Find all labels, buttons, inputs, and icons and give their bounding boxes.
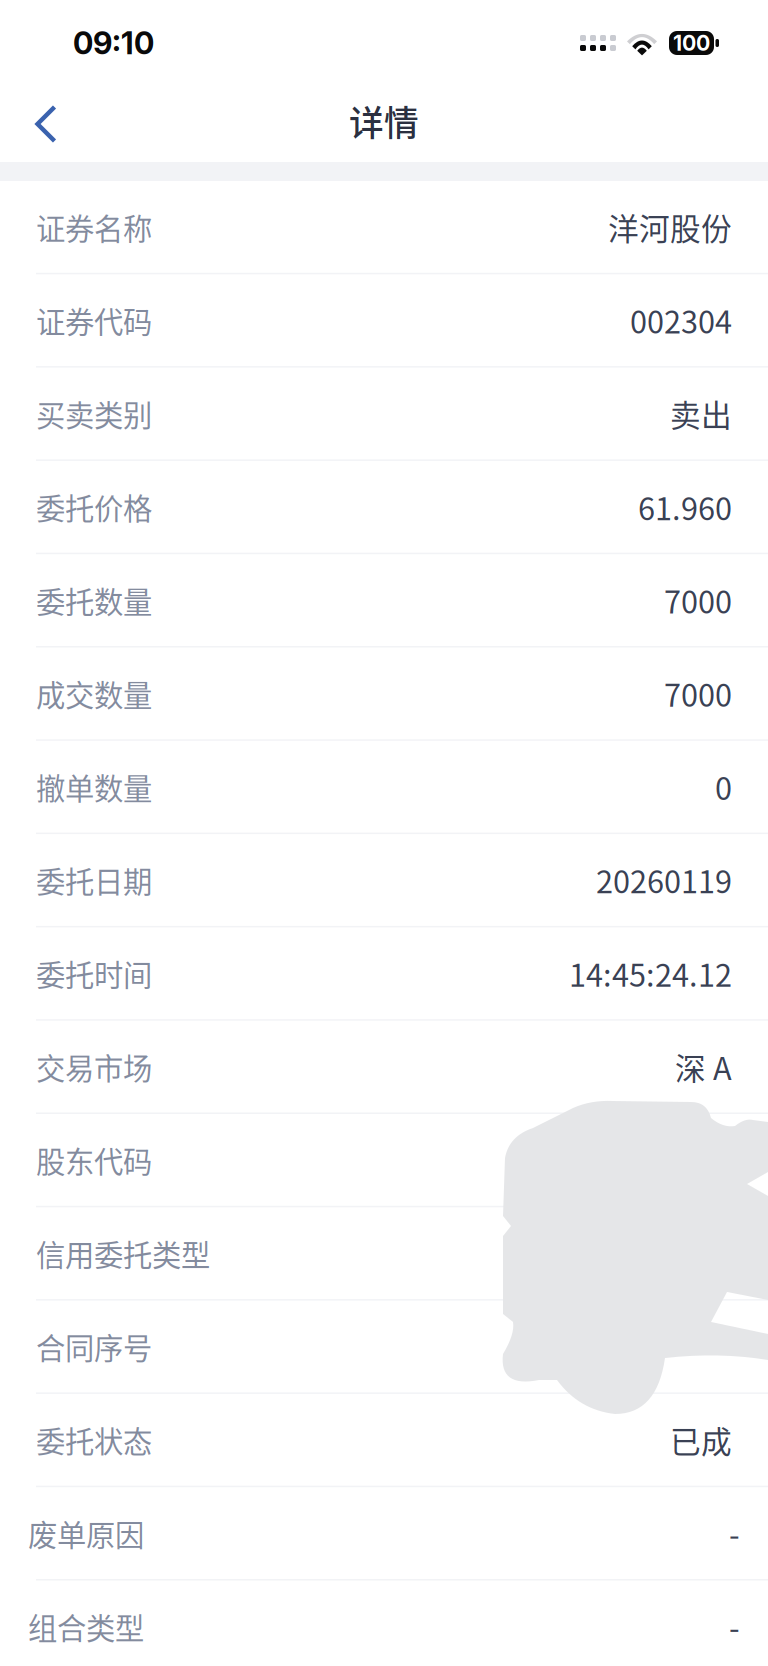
button[interactable]: 组合类型 bbox=[0, 1580, 768, 1666]
staticText: 深 A bbox=[675, 1044, 732, 1089]
staticText: 委托状态 bbox=[36, 1419, 152, 1461]
staticText: 合同序号 bbox=[36, 1325, 152, 1368]
button[interactable]: Back bbox=[0, 86, 92, 162]
button[interactable]: 委托日期 bbox=[0, 834, 768, 927]
button[interactable]: 废单原因 bbox=[0, 1487, 768, 1580]
button[interactable]: 委托价格 bbox=[0, 461, 768, 554]
button[interactable]: 买卖类别 bbox=[0, 368, 768, 461]
staticText: - bbox=[729, 1511, 740, 1555]
button[interactable]: 交易市场 bbox=[0, 1021, 768, 1114]
staticText: 洋河股份 bbox=[608, 205, 732, 249]
button[interactable]: 合同序号 bbox=[0, 1301, 768, 1394]
staticText: 委托日期 bbox=[36, 859, 152, 901]
staticText: 组合类型 bbox=[28, 1605, 144, 1648]
staticText: 已成 bbox=[670, 1418, 732, 1462]
button[interactable]: 成交数量 bbox=[0, 647, 768, 741]
button[interactable]: 委托状态 bbox=[0, 1394, 768, 1487]
staticText: 委托时间 bbox=[36, 952, 152, 995]
staticText: 7000 bbox=[664, 578, 732, 622]
button[interactable]: 股东代码 bbox=[0, 1114, 768, 1207]
staticText: 卖出 bbox=[670, 391, 732, 436]
button[interactable]: 委托时间 bbox=[0, 927, 768, 1021]
staticText: 撤单数量 bbox=[36, 765, 152, 808]
staticText: 002304 bbox=[630, 298, 732, 342]
staticText: 委托数量 bbox=[36, 579, 152, 621]
staticText: 100 bbox=[673, 30, 710, 56]
staticText: 61.960 bbox=[638, 485, 732, 529]
button[interactable]: 证券名称 bbox=[0, 181, 768, 274]
staticText: 信用委托类型 bbox=[36, 1232, 210, 1274]
staticText: 交易市场 bbox=[36, 1045, 152, 1088]
staticText: 成交数量 bbox=[36, 672, 152, 715]
staticText: - bbox=[729, 1604, 740, 1649]
staticText: 0 bbox=[715, 764, 732, 809]
button[interactable]: 委托数量 bbox=[0, 554, 768, 647]
button[interactable]: 信用委托类型 bbox=[0, 1207, 768, 1301]
staticText: 买卖类别 bbox=[36, 392, 152, 435]
staticText: 废单原因 bbox=[28, 1512, 144, 1554]
staticText: 09:10 bbox=[73, 24, 154, 61]
staticText: 7000 bbox=[664, 671, 732, 716]
staticText: 股东代码 bbox=[36, 1139, 152, 1181]
staticText: 14:45:24.12 bbox=[569, 951, 732, 995]
staticText: 证券名称 bbox=[36, 206, 152, 248]
staticText: 20260119 bbox=[596, 858, 732, 902]
button[interactable]: 证券代码 bbox=[0, 274, 768, 368]
staticText: 详情 bbox=[349, 96, 419, 146]
staticText: 委托价格 bbox=[36, 486, 152, 528]
staticText: 证券代码 bbox=[36, 299, 152, 341]
button[interactable]: 撤单数量 bbox=[0, 741, 768, 834]
